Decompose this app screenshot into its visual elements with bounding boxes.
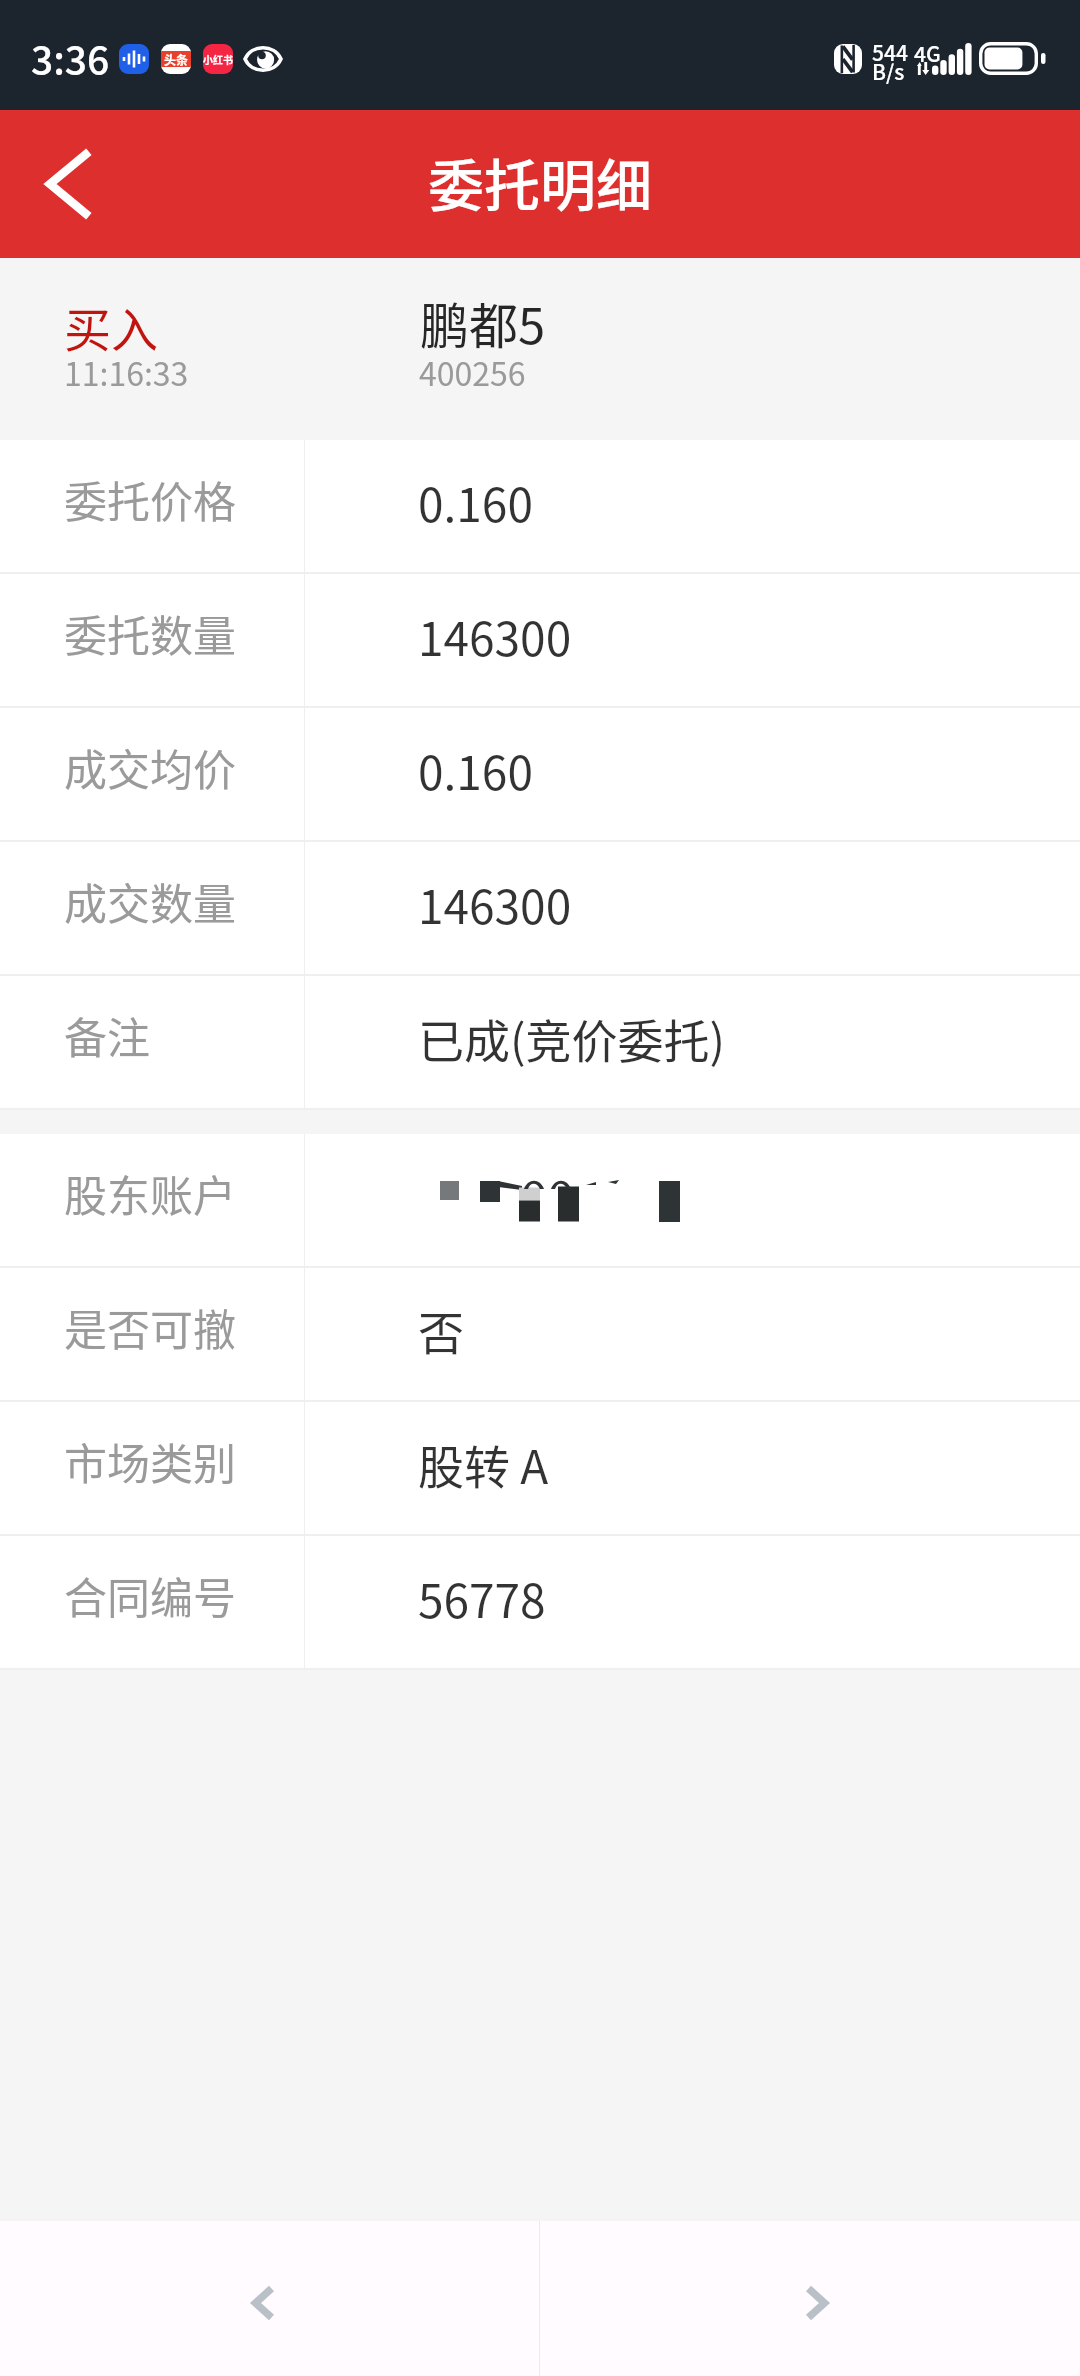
- staticText: 544: [872, 37, 908, 67]
- button[interactable]: 委托数量: [0, 574, 1080, 708]
- staticText: 买入: [64, 292, 158, 360]
- staticText: 56778: [418, 1565, 546, 1632]
- staticText: 400256: [419, 349, 526, 395]
- staticText: 委托数量: [64, 602, 236, 664]
- staticText: 头条: [164, 51, 189, 68]
- button[interactable]: Previous order: [0, 2221, 539, 2376]
- staticText: 股转 A: [418, 1431, 549, 1498]
- staticText: 合同编号: [64, 1564, 236, 1626]
- staticText: 3:36: [31, 30, 110, 86]
- staticText: 146300: [418, 603, 572, 670]
- staticText: 市场类别: [64, 1430, 236, 1492]
- staticText: 成交数量: [64, 870, 236, 932]
- button[interactable]: 合同编号: [0, 1536, 1080, 1670]
- button[interactable]: Next order: [540, 2221, 1080, 2376]
- button[interactable]: 成交数量: [0, 842, 1080, 976]
- button[interactable]: 市场类别: [0, 1402, 1080, 1536]
- staticText: 成交均价: [64, 736, 236, 798]
- staticText: 是否可撤: [64, 1296, 236, 1358]
- staticText: 0.160: [418, 737, 533, 804]
- button[interactable]: 是否可撤: [0, 1268, 1080, 1402]
- staticText: 股东账户: [64, 1162, 236, 1224]
- staticText: 0.160: [418, 469, 533, 536]
- button[interactable]: 备注: [0, 976, 1080, 1110]
- staticText: 小红书: [203, 52, 233, 66]
- staticText: 11:16:33: [64, 349, 189, 395]
- button[interactable]: 委托价格: [0, 440, 1080, 574]
- button[interactable]: Back: [0, 110, 136, 258]
- staticText: 委托明细: [428, 141, 652, 222]
- button[interactable]: 股东账户: [0, 1134, 1080, 1268]
- staticText: 146300: [418, 871, 572, 938]
- staticText: 已成(竞价委托): [418, 1005, 726, 1072]
- staticText: 备注: [64, 1004, 150, 1066]
- staticText: 4G: [914, 38, 941, 68]
- button[interactable]: 成交均价: [0, 708, 1080, 842]
- staticText: B/s: [872, 56, 905, 86]
- staticText: 委托价格: [64, 468, 236, 530]
- staticText: 否: [418, 1297, 464, 1364]
- staticText: 鹏都5: [420, 287, 546, 358]
